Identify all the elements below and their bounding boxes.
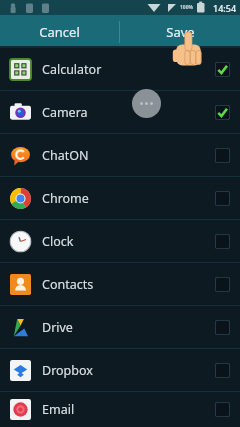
staticText: ChatON <box>42 147 215 164</box>
button[interactable]: Camera <box>0 91 240 133</box>
button[interactable]: Dropbox <box>0 349 240 391</box>
staticText: Drive <box>42 319 215 336</box>
button[interactable]: ChatON <box>0 134 240 176</box>
staticText: Save <box>166 23 195 41</box>
button[interactable]: Chrome <box>0 177 240 219</box>
staticText: Clock <box>42 233 215 250</box>
button[interactable]: Cancel <box>0 15 119 48</box>
staticText: Contacts <box>42 276 215 293</box>
staticText: Email <box>42 401 215 418</box>
staticText: Dropbox <box>42 362 215 379</box>
staticText: 100% <box>180 4 194 11</box>
button[interactable]: Drive <box>0 306 240 348</box>
button[interactable]: Contacts <box>0 263 240 305</box>
staticText: Calculator <box>42 61 215 78</box>
button[interactable]: Save <box>120 15 240 48</box>
staticText: Cancel <box>39 23 80 41</box>
button[interactable]: Calculator <box>0 48 240 90</box>
staticText: Chrome <box>42 190 215 207</box>
button[interactable]: More options <box>132 89 161 118</box>
staticText: Camera <box>42 104 215 121</box>
button[interactable]: Clock <box>0 220 240 262</box>
button[interactable]: Email <box>0 392 240 427</box>
staticText: 14:54 <box>213 2 237 14</box>
